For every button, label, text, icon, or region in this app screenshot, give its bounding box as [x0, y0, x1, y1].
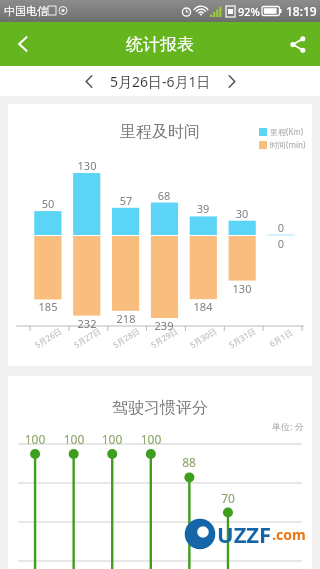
staticText: 130: [76, 158, 98, 173]
staticText: 5月31日: [226, 325, 258, 350]
staticText: 统计报表: [126, 34, 194, 55]
staticText: 18:19: [286, 3, 317, 19]
staticText: 100: [22, 431, 48, 447]
staticText: 68: [153, 188, 175, 203]
staticText: 70: [215, 490, 241, 506]
staticText: UZZF: [217, 519, 272, 549]
staticText: 里程及时间: [120, 122, 200, 142]
staticText: 50: [37, 196, 59, 211]
staticText: 单位: 分: [272, 420, 304, 432]
staticText: 5月28日: [110, 325, 142, 350]
staticText: 130: [230, 281, 254, 296]
staticText: 5月30日: [187, 325, 219, 350]
staticText: 185: [36, 299, 60, 314]
staticText: 时间(min): [270, 139, 306, 150]
staticText: 218: [114, 311, 138, 326]
staticText: 100: [99, 431, 125, 447]
staticText: 92%: [238, 4, 260, 19]
staticText: 5月29日: [148, 325, 180, 350]
staticText: 239: [152, 318, 176, 333]
staticText: 5月26日-6月1日: [110, 72, 211, 91]
staticText: 0: [270, 220, 292, 235]
staticText: 中国电信: [4, 4, 48, 18]
button[interactable]: Back: [0, 22, 46, 66]
staticText: 30: [231, 206, 253, 221]
button[interactable]: Next week: [217, 67, 247, 95]
staticText: 39: [192, 201, 214, 216]
staticText: 5月26日: [32, 325, 64, 350]
staticText: 100: [138, 431, 164, 447]
staticText: 88: [176, 454, 202, 470]
staticText: 232: [75, 316, 99, 331]
staticText: .com: [272, 525, 306, 544]
staticText: 6月1日: [267, 326, 295, 349]
staticText: 里程(Km): [270, 126, 304, 137]
staticText: 5月27日: [71, 325, 103, 350]
staticText: 100: [61, 431, 87, 447]
staticText: 57: [115, 193, 137, 208]
staticText: 184: [191, 299, 215, 314]
staticText: 驾驶习惯评分: [112, 398, 208, 418]
button[interactable]: Share: [274, 22, 320, 66]
button[interactable]: Previous week: [74, 67, 104, 95]
staticText: 0: [269, 236, 293, 251]
